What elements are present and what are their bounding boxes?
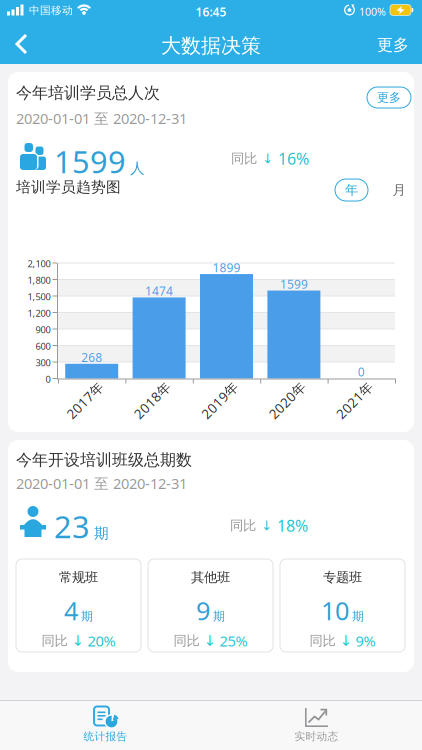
staticText: 20% <box>87 631 115 650</box>
staticText: 1599 <box>280 276 308 292</box>
staticText: 1,200 <box>27 307 50 319</box>
staticText: 2020-01-01 至 2020-12-31 <box>16 473 187 493</box>
staticText: 2019年 <box>197 392 242 409</box>
staticText: ↓ <box>261 518 272 533</box>
button[interactable]: 更多 <box>377 35 409 55</box>
staticText: 16:45 <box>195 4 226 20</box>
staticText: 10 <box>321 593 349 627</box>
staticText: 2020-01-01 至 2020-12-31 <box>16 108 187 128</box>
button[interactable]: 年 <box>335 179 368 201</box>
staticText: ↓ <box>262 151 273 166</box>
staticText: 2017年 <box>62 392 107 409</box>
staticText: 中国移动 <box>29 4 73 17</box>
staticText: 实时动态 <box>294 730 338 743</box>
staticText: 其他班 <box>191 569 230 585</box>
staticText: 1,500 <box>27 290 50 303</box>
staticText: 600 <box>35 340 50 352</box>
staticText: 同比 <box>231 150 257 167</box>
staticText: ↓ <box>203 632 215 649</box>
staticText: ↓ <box>71 632 83 649</box>
staticText: 4 <box>64 593 78 627</box>
staticText: 期 <box>352 609 364 623</box>
staticText: 0 <box>45 373 50 385</box>
staticText: 统计报告 <box>83 730 127 743</box>
staticText: 300 <box>35 356 50 369</box>
staticText: 9 <box>196 593 210 627</box>
staticText: 同比 <box>41 633 67 649</box>
staticText: 1,800 <box>27 274 50 286</box>
button[interactable]: 更多 <box>367 87 411 108</box>
staticText: 900 <box>35 323 50 336</box>
staticText: 2018年 <box>130 392 175 409</box>
staticText: ↓ <box>339 632 351 649</box>
staticText: 1474 <box>145 283 173 299</box>
staticText: 2021年 <box>332 392 377 409</box>
staticText: 常规班 <box>59 569 98 585</box>
staticText: 人 <box>130 159 145 177</box>
staticText: 268 <box>81 349 102 365</box>
staticText: 同比 <box>173 633 199 649</box>
staticText: 1899 <box>212 260 240 275</box>
staticText: 月 <box>392 182 405 198</box>
staticText: 16% <box>278 148 309 169</box>
staticText: 0 <box>358 364 365 380</box>
staticText: 同比 <box>230 517 256 534</box>
staticText: 今年培训学员总人次 <box>16 83 160 103</box>
staticText: 期 <box>81 609 93 623</box>
staticText: 更多 <box>377 90 401 105</box>
staticText: 100% <box>359 4 386 19</box>
staticText: 期 <box>94 524 109 542</box>
staticText: 2,100 <box>27 257 50 270</box>
staticText: 大数据决策 <box>161 33 261 58</box>
staticText: 今年开设培训班级总期数 <box>16 450 192 470</box>
staticText: 18% <box>277 515 308 536</box>
staticText: 1599 <box>54 141 126 182</box>
staticText: 期 <box>213 609 225 623</box>
staticText: 更多 <box>377 35 409 55</box>
button[interactable]: 统计报告 <box>0 700 211 750</box>
staticText: 2020年 <box>264 392 309 409</box>
staticText: 培训学员趋势图 <box>16 178 121 196</box>
button[interactable]: 月 <box>386 179 412 201</box>
staticText: 9% <box>355 631 375 650</box>
staticText: 同比 <box>309 633 335 649</box>
button[interactable] <box>10 31 36 57</box>
staticText: 23 <box>54 506 90 547</box>
staticText: 专题班 <box>323 569 362 585</box>
staticText: 25% <box>219 631 247 650</box>
button[interactable]: 实时动态 <box>211 700 422 750</box>
staticText: 年 <box>345 182 358 198</box>
